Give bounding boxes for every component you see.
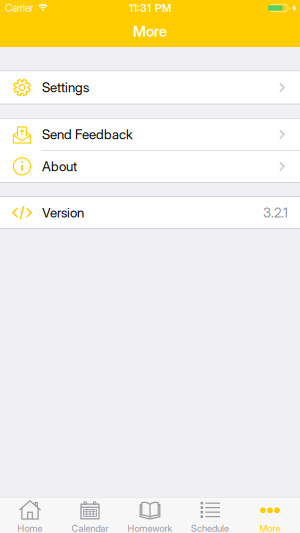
button[interactable]: More — [240, 497, 300, 533]
staticText: Settings — [42, 80, 89, 95]
staticText: About — [42, 158, 77, 174]
staticText: 11:31 PM — [129, 2, 171, 14]
staticText: Homework — [127, 523, 172, 533]
button[interactable]: Homework — [120, 497, 180, 533]
staticText: More — [133, 23, 167, 40]
staticText: Version — [42, 205, 84, 220]
button[interactable]: Schedule — [180, 497, 240, 533]
button[interactable]: About — [0, 151, 300, 182]
button[interactable]: Settings — [0, 71, 300, 104]
button[interactable]: Calendar — [60, 497, 120, 533]
staticText: More — [259, 523, 280, 533]
staticText: Carrier — [5, 2, 33, 14]
staticText: 3.2.1 — [263, 205, 288, 220]
staticText: Home — [17, 523, 42, 533]
staticText: Calendar — [71, 523, 108, 533]
button[interactable]: Send Feedback — [0, 119, 300, 150]
button[interactable]: Home — [0, 497, 60, 533]
staticText: Send Feedback — [42, 126, 133, 142]
staticText: Schedule — [191, 523, 229, 533]
